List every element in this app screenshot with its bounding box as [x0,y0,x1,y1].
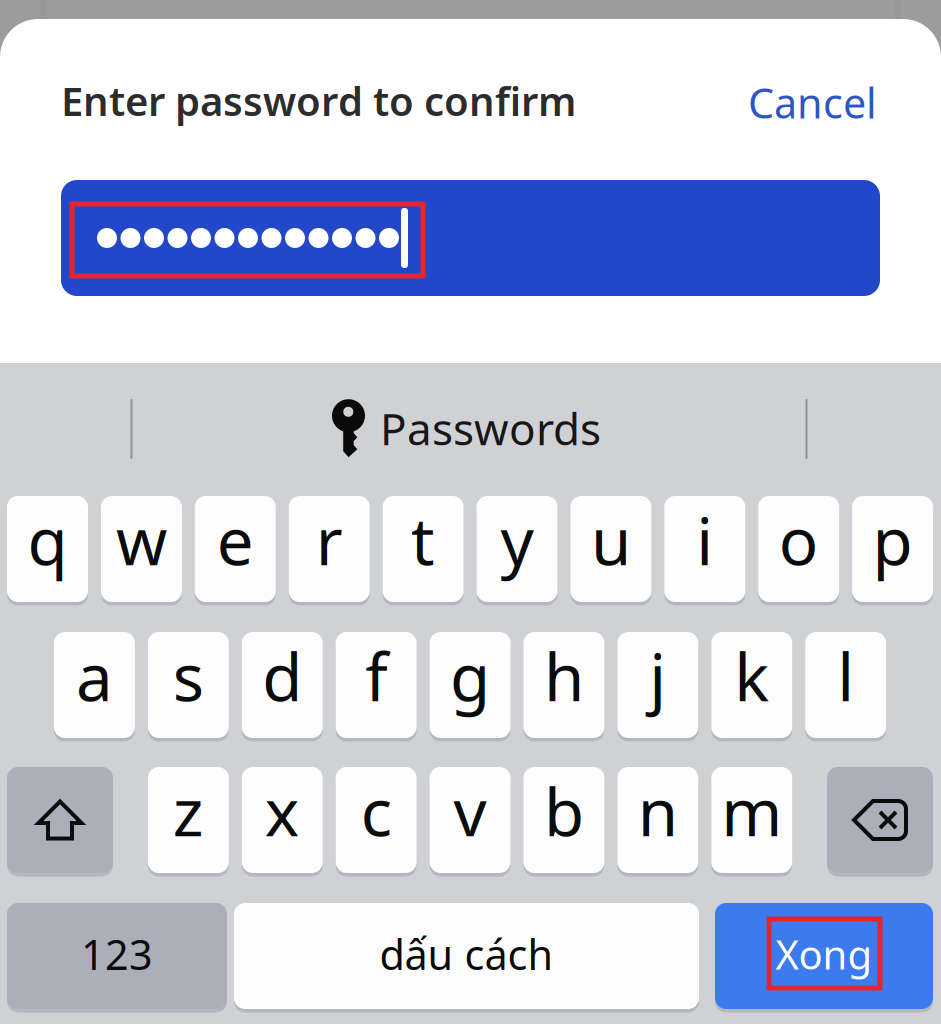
staticText: s [173,633,204,719]
button[interactable]: n [617,765,698,875]
staticText: dấu cách [379,927,553,981]
button[interactable]: Xong [715,901,933,1011]
staticText: x [265,768,300,854]
button[interactable]: d [242,630,323,740]
staticText: q [27,497,67,583]
staticText: h [544,633,584,719]
button[interactable]: Cancel [748,75,877,130]
button[interactable]: s [148,630,229,740]
button[interactable]: c [336,765,417,875]
staticText: Enter password to confirm [61,74,576,127]
button[interactable]: Enter password to confirm [61,74,576,127]
staticText: t [411,497,435,583]
staticText: a [76,633,113,719]
button[interactable]: f [336,630,417,740]
staticText: i [696,497,713,583]
button[interactable]: y [476,494,557,604]
button[interactable]: i [664,494,745,604]
button[interactable]: p [852,494,933,604]
staticText: e [217,497,254,583]
staticText: u [591,497,631,583]
staticText: j [649,633,666,719]
staticText: Cancel [748,75,877,130]
staticText: r [316,497,343,583]
button[interactable]: dấu cách [234,901,699,1011]
button[interactable]: w [101,494,182,604]
button[interactable]: e [195,494,276,604]
staticText: w [116,497,167,583]
staticText: b [544,768,584,854]
button[interactable]: j [617,630,698,740]
button[interactable]: g [430,630,511,740]
staticText: y [500,497,533,583]
button[interactable]: r [289,494,370,604]
staticText: m [721,768,782,854]
staticText: l [837,633,854,719]
staticText: v [454,768,487,854]
staticText: z [173,768,204,854]
staticText: p [873,497,913,583]
staticText: c [361,768,392,854]
button[interactable]: 123 [7,901,227,1011]
button[interactable]: h [523,630,604,740]
staticText: o [779,497,819,583]
staticText: d [262,633,302,719]
button[interactable]: q [7,494,88,604]
staticText: g [450,633,490,719]
button[interactable]: Shift [7,765,113,875]
staticText: Passwords [380,399,601,457]
staticText: n [638,768,678,854]
staticText: 123 [81,927,153,981]
staticText: f [365,633,387,719]
staticText: k [734,633,769,719]
button[interactable]: t [383,494,464,604]
button[interactable]: a [54,630,135,740]
button[interactable]: k [711,630,792,740]
button[interactable]: z [148,765,229,875]
button[interactable]: o [758,494,839,604]
button[interactable]: v [430,765,511,875]
staticText: Xong [775,927,872,980]
button[interactable]: m [711,765,792,875]
button[interactable]: Delete [827,765,933,875]
button[interactable]: x [242,765,323,875]
button[interactable]: u [570,494,651,604]
button[interactable]: b [523,765,604,875]
button[interactable]: l [805,630,886,740]
